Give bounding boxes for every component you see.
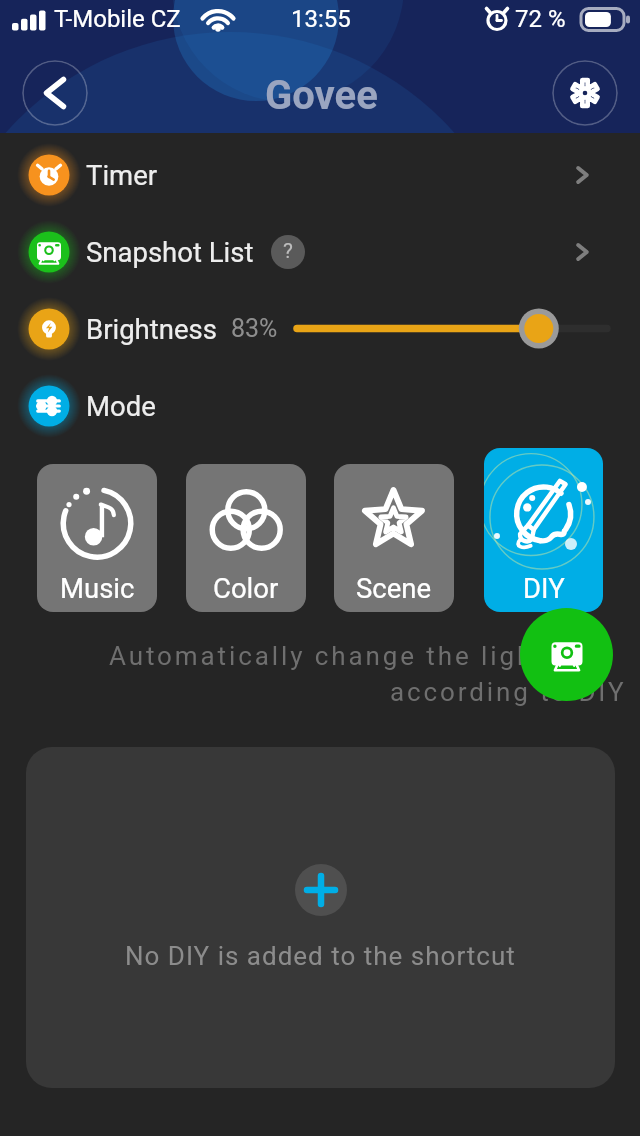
staticText: Color bbox=[213, 572, 279, 604]
button[interactable]: Back bbox=[22, 60, 88, 126]
button[interactable]: Scene bbox=[334, 464, 454, 612]
staticText: Brightness bbox=[86, 313, 217, 345]
staticText: ? bbox=[283, 239, 293, 264]
staticText: Mode bbox=[86, 390, 156, 422]
staticText: 13:55 bbox=[291, 5, 351, 33]
staticText: 72 % bbox=[515, 5, 566, 33]
staticText: Govee bbox=[265, 72, 378, 119]
staticText: Music bbox=[60, 572, 135, 604]
button[interactable]: Help bbox=[271, 235, 305, 269]
button[interactable]: Add DIY bbox=[295, 864, 347, 916]
button[interactable]: Mode bbox=[0, 367, 640, 444]
button[interactable]: Music bbox=[37, 464, 157, 612]
staticText: T-Mobile CZ bbox=[54, 5, 181, 33]
button[interactable]: Settings bbox=[552, 60, 618, 126]
staticText: Timer bbox=[86, 159, 158, 191]
button[interactable]: Snapshot List bbox=[0, 213, 640, 290]
staticText: No DIY is added to the shortcut bbox=[125, 941, 516, 971]
button[interactable]: Timer bbox=[0, 136, 640, 213]
button[interactable]: Brightness slider bbox=[290, 290, 640, 367]
staticText: Automatically change the lighting bbox=[109, 641, 590, 671]
button[interactable]: DIY bbox=[484, 448, 603, 612]
staticText: DIY bbox=[523, 572, 565, 604]
staticText: Scene bbox=[356, 572, 432, 604]
staticText: Snapshot List bbox=[86, 236, 254, 268]
button[interactable]: Color bbox=[186, 464, 306, 612]
button[interactable]: Take snapshot bbox=[520, 608, 613, 701]
staticText: 83% bbox=[231, 314, 278, 343]
staticText: according to DIY bbox=[390, 677, 627, 707]
